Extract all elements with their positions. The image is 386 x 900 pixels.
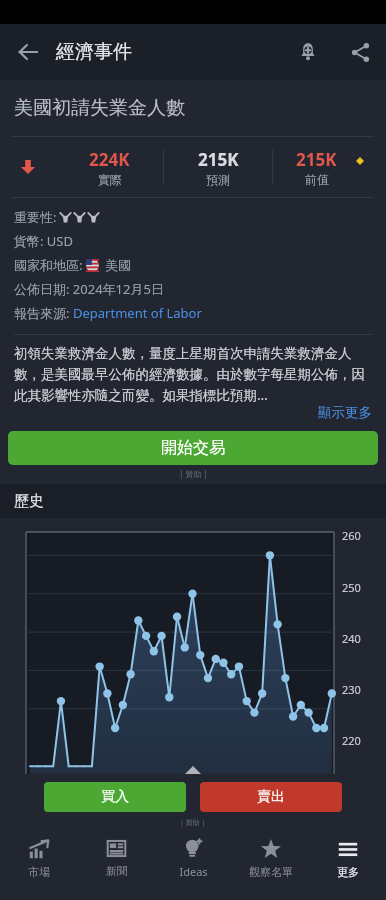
staticText: 215K [198,148,239,171]
button[interactable]: 買入 [44,782,186,812]
button[interactable]: Department of Labor [73,304,202,322]
staticText: Department of Labor [73,304,202,322]
button[interactable]: Add alert [282,26,334,78]
staticText: | 贊助 | [180,818,206,828]
staticText: 260 [342,528,361,543]
staticText: 美國初請失業金人數 [14,96,185,120]
staticText: 初領失業救濟金人數，量度上星期首次申請失業救濟金人數，是美國最早公佈的經濟數據。… [14,345,372,404]
staticText: 市場 [28,865,50,879]
staticText: 預測 [206,172,230,187]
staticText: 230 [342,682,361,697]
button[interactable]: Back [0,24,56,80]
button[interactable]: Share [334,26,386,78]
staticText: | 贊助 | [179,468,208,479]
staticText: 顯示更多 [318,404,372,421]
staticText: 賣出 [257,788,285,806]
staticText: 實際 [98,172,122,187]
button[interactable]: 更多 [309,828,386,900]
staticText: 前值 [305,172,329,187]
button[interactable]: 市場 [0,828,78,900]
staticText: 國家和地區: [14,256,86,274]
staticText: 觀察名單 [249,865,293,879]
button[interactable]: 開始交易 [8,431,378,465]
staticText: 220 [342,733,361,748]
staticText: Ideas [179,864,208,879]
staticText: 重要性: [14,208,60,226]
staticText: 經濟事件 [56,40,132,64]
staticText: 215K [296,148,337,171]
button[interactable]: 新聞 [78,828,155,900]
staticText: 貨幣: USD [14,232,73,250]
button[interactable]: 賣出 [200,782,342,812]
button[interactable]: 顯示更多 [318,404,372,421]
staticText: 公佈日期: 2024年12月5日 [14,280,164,298]
staticText: 美國 [105,257,131,273]
staticText: 240 [342,631,361,646]
staticText: 新聞 [106,864,128,878]
staticText: 開始交易 [161,438,225,458]
staticText: 歷史 [14,492,44,511]
staticText: 224K [89,148,130,171]
button[interactable]: 觀察名單 [232,828,309,900]
staticText: 更多 [337,865,359,879]
button[interactable]: Ideas [155,828,232,900]
staticText: 250 [342,580,361,595]
staticText: 買入 [101,788,129,806]
staticText: 報告來源: [14,304,73,322]
